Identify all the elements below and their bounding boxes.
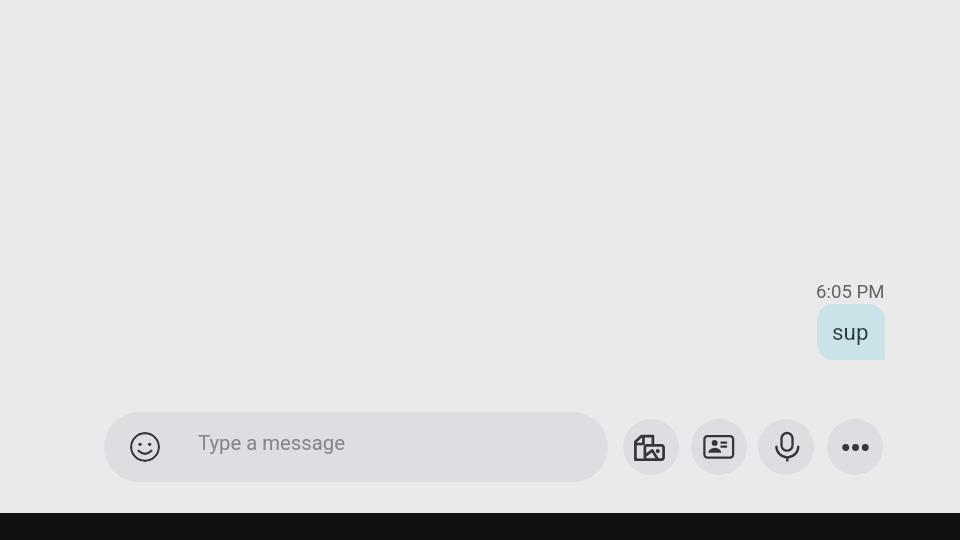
button[interactable]: Choose an emoji [104,412,608,482]
staticText: 6:05 PM [816,281,885,303]
button[interactable]: Choose an emoji [130,432,160,462]
staticText: Type a message [198,431,345,455]
button[interactable]: Send photo or file [623,419,679,475]
button[interactable]: Send contact card [691,419,747,475]
button[interactable]: sup [817,304,885,360]
staticText: sup [832,319,869,345]
button[interactable]: More options [827,419,883,475]
button[interactable]: Record voice message [758,419,814,475]
